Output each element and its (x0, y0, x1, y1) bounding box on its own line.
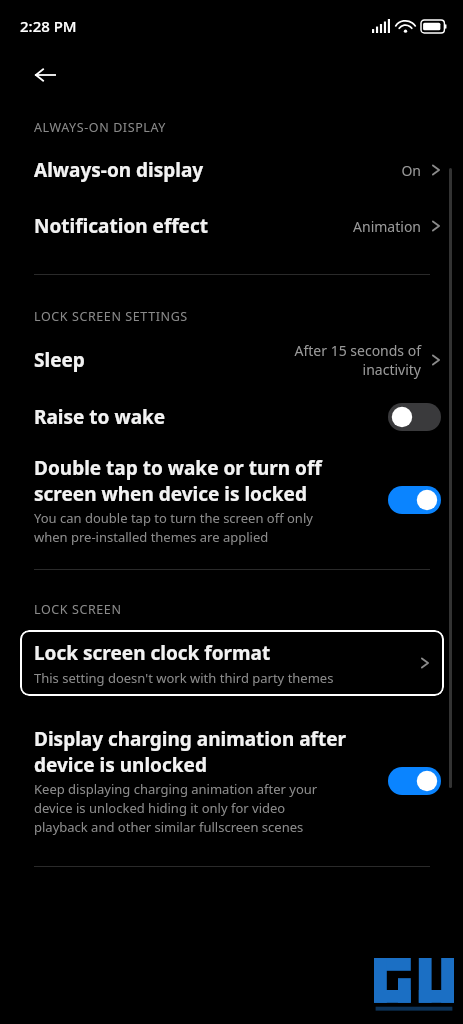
button[interactable]: Notification effect (0, 198, 463, 254)
staticText: You can double tap to turn the screen of… (34, 509, 313, 546)
staticText: On (401, 161, 421, 180)
staticText: Sleep (34, 347, 294, 373)
staticText: Double tap to wake or turn off screen wh… (34, 455, 322, 506)
staticText: 2:28 PM (20, 16, 77, 36)
staticText: After 15 seconds of inactivity (294, 341, 421, 379)
button[interactable]: Toggle off (388, 403, 441, 431)
staticText: Raise to wake (34, 404, 166, 430)
other: Open (429, 216, 443, 236)
other: Open (429, 350, 443, 370)
staticText: Always-on display (34, 157, 401, 183)
staticText: Keep displaying charging animation after… (34, 780, 318, 836)
button[interactable]: Raise to wake (0, 389, 463, 445)
staticText: Animation (353, 217, 421, 236)
button[interactable]: Display charging animation after device … (0, 716, 463, 846)
button[interactable]: Always-on display (0, 142, 463, 198)
other: Open (418, 653, 432, 673)
staticText: LOCK SCREEN SETTINGS (34, 308, 188, 325)
button[interactable]: Double tap to wake or turn off screen wh… (0, 445, 463, 555)
button[interactable]: Sleep (0, 331, 463, 389)
staticText: Notification effect (34, 213, 353, 239)
button[interactable]: Lock screen clock format (20, 630, 444, 696)
staticText: ALWAYS-ON DISPLAY (34, 119, 166, 136)
button[interactable]: Back (22, 52, 68, 98)
staticText: Lock screen clock format (34, 640, 271, 666)
button[interactable]: Toggle on (388, 767, 441, 795)
staticText: This setting doesn't work with third par… (34, 669, 334, 687)
other: Open (429, 160, 443, 180)
staticText: LOCK SCREEN (34, 601, 122, 618)
staticText: Display charging animation after device … (34, 726, 347, 777)
button[interactable]: Toggle on (388, 486, 441, 514)
